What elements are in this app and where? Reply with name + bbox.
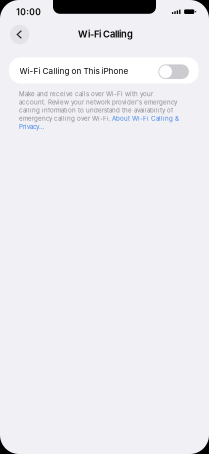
staticText: Privacy… [19,123,44,130]
staticText: Make and receive calls over Wi-Fi with y… [19,90,153,98]
button[interactable]: About Wi-Fi Calling & [112,115,179,122]
button[interactable]: Back [10,25,29,44]
staticText: calling information to understand the av… [19,107,173,114]
staticText: Wi-Fi Calling on This iPhone [19,66,128,76]
staticText: 10:00 [16,7,41,17]
button[interactable]: Privacy… [19,123,44,130]
staticText: About Wi-Fi Calling & [112,115,179,122]
staticText: account. Review your network provider's … [19,98,177,106]
staticText: Wi-Fi Calling [78,28,133,40]
staticText: emergency calling over Wi-Fi. [19,115,111,122]
button[interactable]: Wi-Fi Calling on This iPhone [9,57,199,83]
